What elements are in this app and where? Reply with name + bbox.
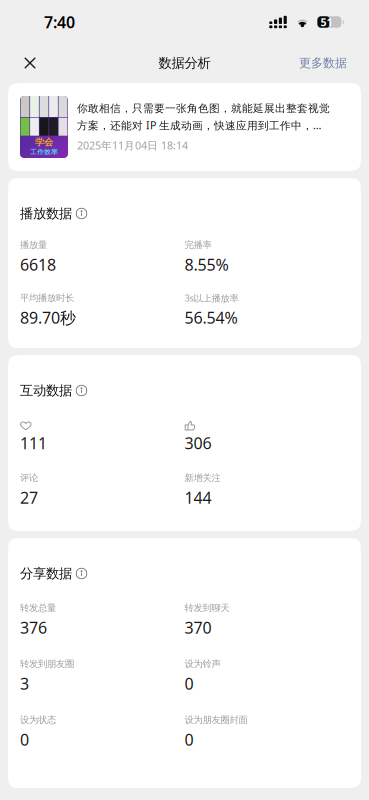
staticText: 51 bbox=[320, 15, 332, 29]
staticText: 设为朋友圈封面 bbox=[184, 714, 247, 726]
staticText: 7:40 bbox=[44, 11, 75, 33]
staticText: 播放量 bbox=[20, 239, 47, 251]
staticText: 工作效率 bbox=[30, 148, 58, 156]
staticText: 111 bbox=[20, 432, 47, 454]
staticText: 新增关注 bbox=[184, 472, 220, 484]
staticText: 0 bbox=[184, 673, 193, 694]
button[interactable]: 更多数据 bbox=[299, 44, 361, 82]
staticText: 144 bbox=[184, 487, 211, 508]
staticText: 学会 bbox=[35, 136, 53, 148]
staticText: 转发总量 bbox=[20, 602, 56, 614]
staticText: 306 bbox=[184, 432, 211, 454]
staticText: 播放数据 bbox=[20, 205, 72, 222]
staticText: 8.55% bbox=[184, 254, 228, 275]
staticText: 2025年11月04日 18:14 bbox=[77, 138, 188, 152]
staticText: 完播率 bbox=[184, 239, 211, 251]
staticText: 27 bbox=[20, 487, 38, 508]
staticText: 6618 bbox=[20, 254, 56, 275]
staticText: 互动数据 bbox=[20, 382, 72, 399]
staticText: 89.70秒 bbox=[20, 307, 76, 328]
button[interactable]: 学会 bbox=[8, 83, 361, 171]
staticText: 平均播放时长 bbox=[20, 292, 74, 304]
staticText: 3s以上播放率 bbox=[184, 292, 238, 304]
staticText: 3 bbox=[20, 673, 29, 694]
staticText: 你敢相信，只需要一张角色图，就能延展出整套视觉方案，还能对 IP 生成动画，快速… bbox=[77, 102, 330, 132]
staticText: 0 bbox=[184, 729, 193, 750]
staticText: 更多数据 bbox=[299, 56, 347, 70]
staticText: 评论 bbox=[20, 472, 38, 484]
staticText: 370 bbox=[184, 617, 211, 638]
staticText: 设为铃声 bbox=[184, 658, 220, 670]
staticText: 0 bbox=[20, 729, 29, 750]
staticText: 数据分析 bbox=[158, 55, 210, 71]
staticText: 转发到朋友圈 bbox=[20, 658, 74, 670]
button[interactable]: 关闭 bbox=[8, 44, 52, 82]
staticText: 56.54% bbox=[184, 307, 237, 328]
staticText: 分享数据 bbox=[20, 565, 72, 582]
staticText: 设为状态 bbox=[20, 714, 56, 726]
staticText: 376 bbox=[20, 617, 47, 638]
staticText: 转发到聊天 bbox=[184, 602, 229, 614]
